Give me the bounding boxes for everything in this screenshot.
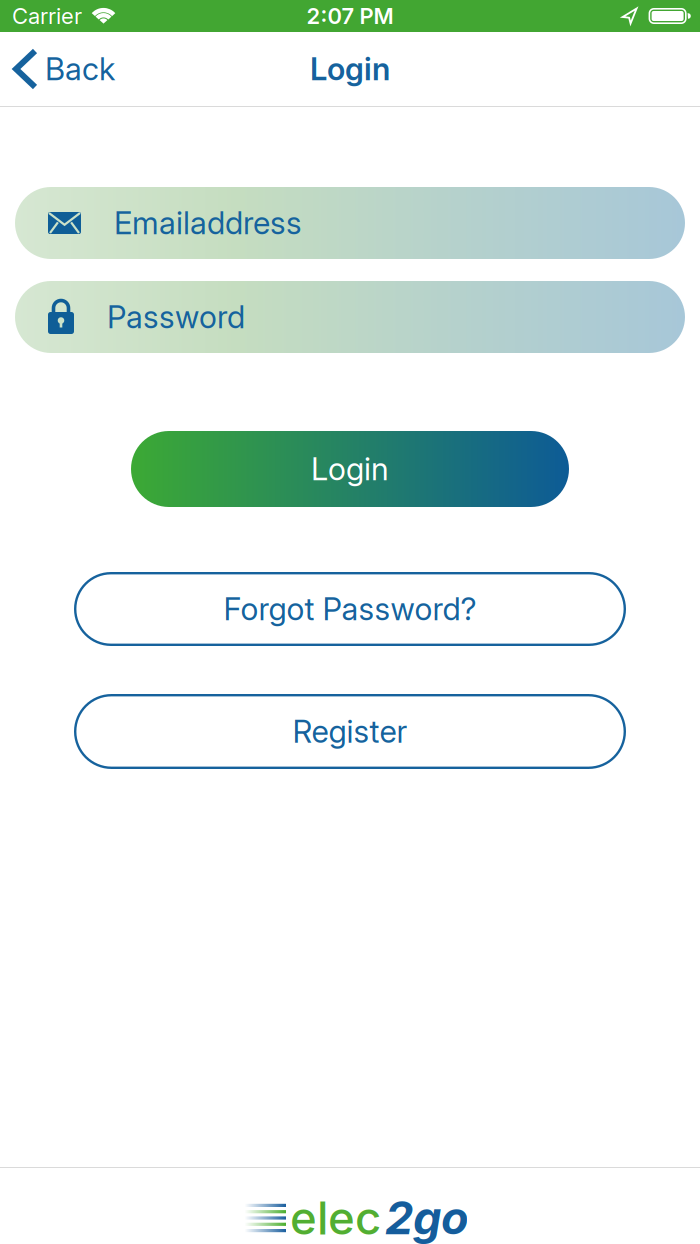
staticText: 2go bbox=[385, 1191, 469, 1244]
staticText: Back bbox=[45, 50, 115, 88]
staticText: elec bbox=[290, 1190, 381, 1244]
button[interactable]: Back bbox=[0, 50, 115, 88]
staticText: Register bbox=[292, 713, 407, 750]
button[interactable]: Register bbox=[74, 694, 626, 769]
staticText: Forgot Password? bbox=[223, 590, 476, 628]
staticText: 2:07 PM bbox=[306, 3, 393, 29]
staticText: Emailaddress bbox=[114, 204, 302, 242]
staticText: Login bbox=[310, 50, 390, 88]
button[interactable]: Login bbox=[131, 431, 569, 507]
button[interactable]: Forgot Password? bbox=[74, 572, 626, 646]
staticText: Carrier bbox=[12, 3, 82, 29]
staticText: Login bbox=[311, 450, 389, 488]
staticText: Password bbox=[107, 298, 245, 336]
